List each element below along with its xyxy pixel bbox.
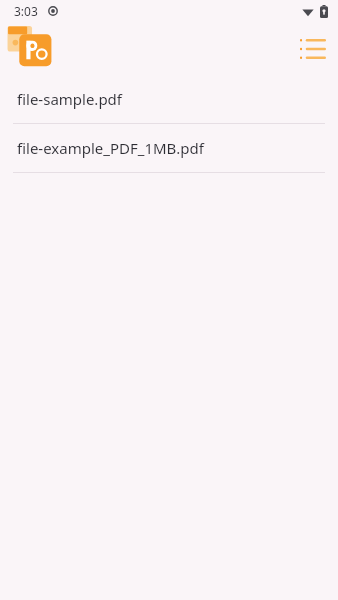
staticText: file-example_PDF_1MB.pdf [17,138,204,158]
staticText: file-sample.pdf [17,89,123,109]
button[interactable]: App logo [5,24,57,75]
button[interactable]: List options [292,28,334,70]
staticText: 3:03 [14,3,38,19]
button[interactable]: file-example_PDF_1MB.pdf [0,124,338,172]
button[interactable]: file-sample.pdf [0,75,338,123]
